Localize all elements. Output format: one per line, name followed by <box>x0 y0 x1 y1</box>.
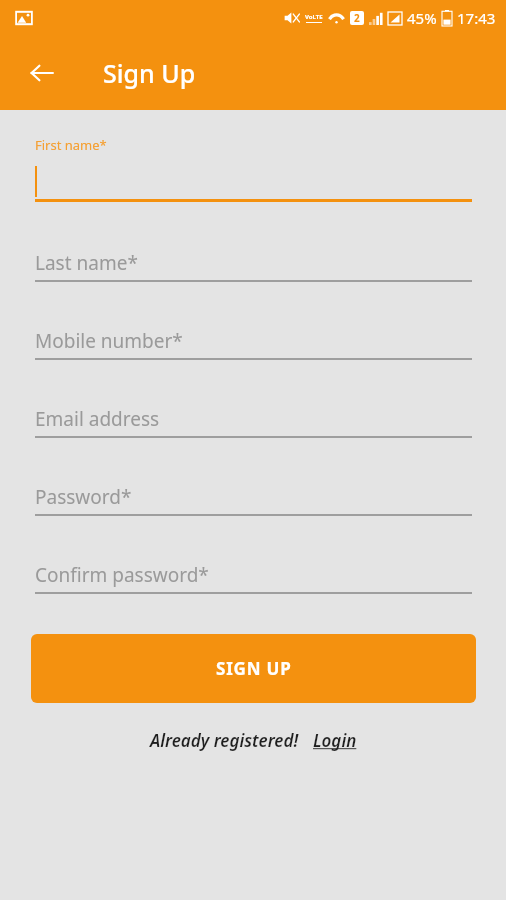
staticText: VoLTE <box>305 13 323 21</box>
button[interactable]: Password* <box>0 484 506 516</box>
staticText: 17:43 <box>457 8 496 28</box>
button[interactable]: Email address <box>0 406 506 438</box>
button[interactable]: Back <box>18 49 66 97</box>
staticText: Password* <box>35 484 132 510</box>
staticText: Email address <box>35 406 160 432</box>
button[interactable]: SIGN UP <box>31 634 476 703</box>
button[interactable] <box>0 164 506 202</box>
staticText: SIGN UP <box>216 657 292 680</box>
staticText: 45% <box>407 8 437 28</box>
staticText: First name* <box>35 136 107 154</box>
button[interactable]: Last name* <box>0 250 506 282</box>
button[interactable]: Mobile number* <box>0 328 506 360</box>
staticText: Sign Up <box>103 56 196 90</box>
staticText: Last name* <box>35 250 138 276</box>
staticText: Already registered! <box>150 729 299 752</box>
staticText: Mobile number* <box>35 328 183 354</box>
button[interactable]: Login <box>313 729 357 752</box>
staticText: 2 <box>354 11 360 25</box>
staticText: Confirm password* <box>35 562 209 588</box>
staticText: Login <box>313 729 357 752</box>
button[interactable]: Confirm password* <box>0 562 506 594</box>
